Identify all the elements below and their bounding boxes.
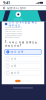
button[interactable]: 불만족 [5, 70, 41, 76]
staticText: 9:41 [3, 0, 10, 5]
staticText: 1. 서비스 이용 만족도는 어떠신가요? [5, 40, 38, 48]
staticText: 조사 안내사항을 확인해주세요 [9, 21, 38, 27]
staticText: 약 3분이며 중도에 종료하셔도 괜찮습니다. [5, 33, 23, 34]
button[interactable]: 보통 [5, 63, 41, 69]
button[interactable]: 만족 [5, 56, 41, 62]
staticText: 만족 [11, 57, 17, 60]
staticText: 매우 만족 [11, 50, 24, 53]
staticText: 불만족 [11, 71, 20, 74]
staticText: 로는 절대 사용되지 않습니다. 소요 시간은 [5, 30, 22, 32]
button[interactable]: Back [2, 6, 5, 10]
staticText: 본 설문은 서비스 품질 향상을 위한 것으로 [5, 26, 22, 28]
button[interactable]: 매우 만족 [5, 49, 41, 55]
staticText: 모든 문항에 성실히 답변해 주시면 감사하 [5, 35, 22, 36]
staticText: 보통 [11, 64, 17, 67]
staticText: 겠습니다. 참여해 주셔서 감사합니다. [5, 37, 20, 38]
staticText: 설문조사 참여 [7, 6, 26, 10]
staticText: 응답해주신 내용은 통계 목적 이외의 용도 [5, 28, 22, 30]
